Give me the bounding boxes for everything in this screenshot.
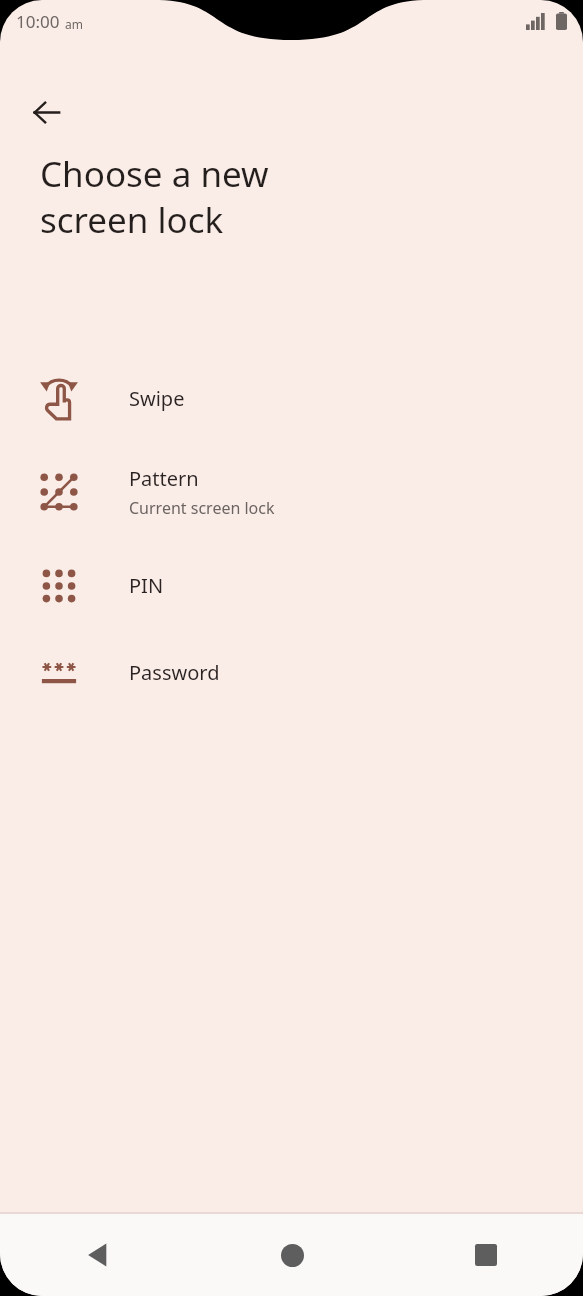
staticText: Password bbox=[129, 659, 220, 686]
button[interactable]: Back bbox=[0, 1214, 195, 1296]
button[interactable]: Pattern bbox=[0, 442, 583, 542]
button[interactable]: Swipe bbox=[0, 355, 583, 442]
button[interactable]: Password bbox=[0, 629, 583, 716]
button[interactable]: Back bbox=[18, 84, 74, 140]
button[interactable]: PIN bbox=[0, 542, 583, 629]
staticText: am bbox=[65, 16, 83, 32]
staticText: PIN bbox=[129, 572, 164, 599]
staticText: 10:00 bbox=[16, 10, 60, 33]
button[interactable]: Home bbox=[195, 1214, 389, 1296]
staticText: Current screen lock bbox=[129, 497, 275, 519]
staticText: Pattern bbox=[129, 465, 199, 492]
staticText: Choose a new screen lock bbox=[40, 150, 269, 243]
button[interactable]: Recent apps bbox=[389, 1214, 583, 1296]
staticText: Swipe bbox=[129, 385, 185, 412]
